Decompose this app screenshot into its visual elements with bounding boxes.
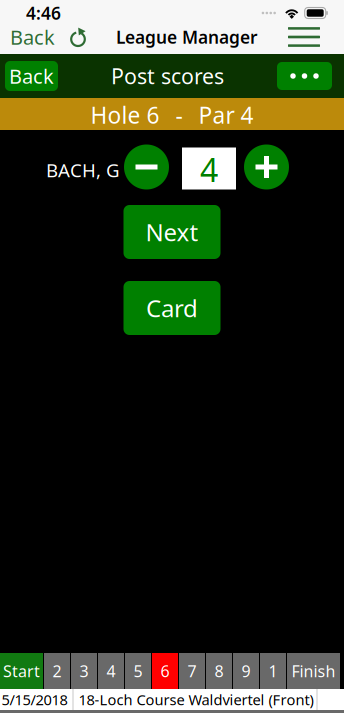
staticText: Start [3,660,40,682]
staticText: 5/15/2018 [1,690,67,709]
staticText: 18-Loch Course Waldviertel (Front) [78,690,313,709]
button[interactable]: 2 [44,653,70,689]
staticText: League Manager [116,25,258,48]
button[interactable]: Decrease score [124,144,169,189]
button[interactable]: 8 [206,653,232,689]
button[interactable]: Next [123,205,220,259]
button[interactable]: Reload [70,27,86,47]
staticText: 9 [241,660,250,682]
button[interactable]: 4 [98,653,124,689]
staticText: 1 [268,660,277,682]
button[interactable]: 3 [71,653,97,689]
staticText: 4:46 [26,1,61,24]
staticText: Hole 6 [90,100,159,130]
button[interactable]: 9 [233,653,259,689]
staticText: - [175,100,182,130]
button[interactable]: Menu [288,27,320,47]
button[interactable]: 7 [179,653,205,689]
staticText: 4 [106,660,115,682]
button[interactable]: Finish [287,653,340,689]
staticText: 7 [187,660,196,682]
staticText: Back [9,63,54,89]
staticText: BACH, G [46,158,120,182]
staticText: Post scores [111,62,224,90]
staticText: 5 [133,660,142,682]
button[interactable]: More options [277,62,332,90]
staticText: 8 [214,660,223,682]
button[interactable]: 5 [125,653,151,689]
button[interactable]: Card [123,281,220,335]
button[interactable]: Start [0,653,43,689]
button[interactable]: 1 [260,653,286,689]
button[interactable]: Back [5,61,58,91]
button[interactable]: 6 [152,653,178,689]
button[interactable]: Increase score [244,144,289,189]
staticText: 6 [160,660,169,682]
staticText: Par 4 [198,100,253,130]
staticText: Next [145,216,198,248]
staticText: Finish [291,660,335,682]
staticText: 3 [79,660,88,682]
staticText: Back [10,24,55,50]
button[interactable]: Back [10,24,55,50]
staticText: 4 [200,148,218,191]
staticText: 2 [52,660,61,682]
staticText: Card [146,292,198,324]
